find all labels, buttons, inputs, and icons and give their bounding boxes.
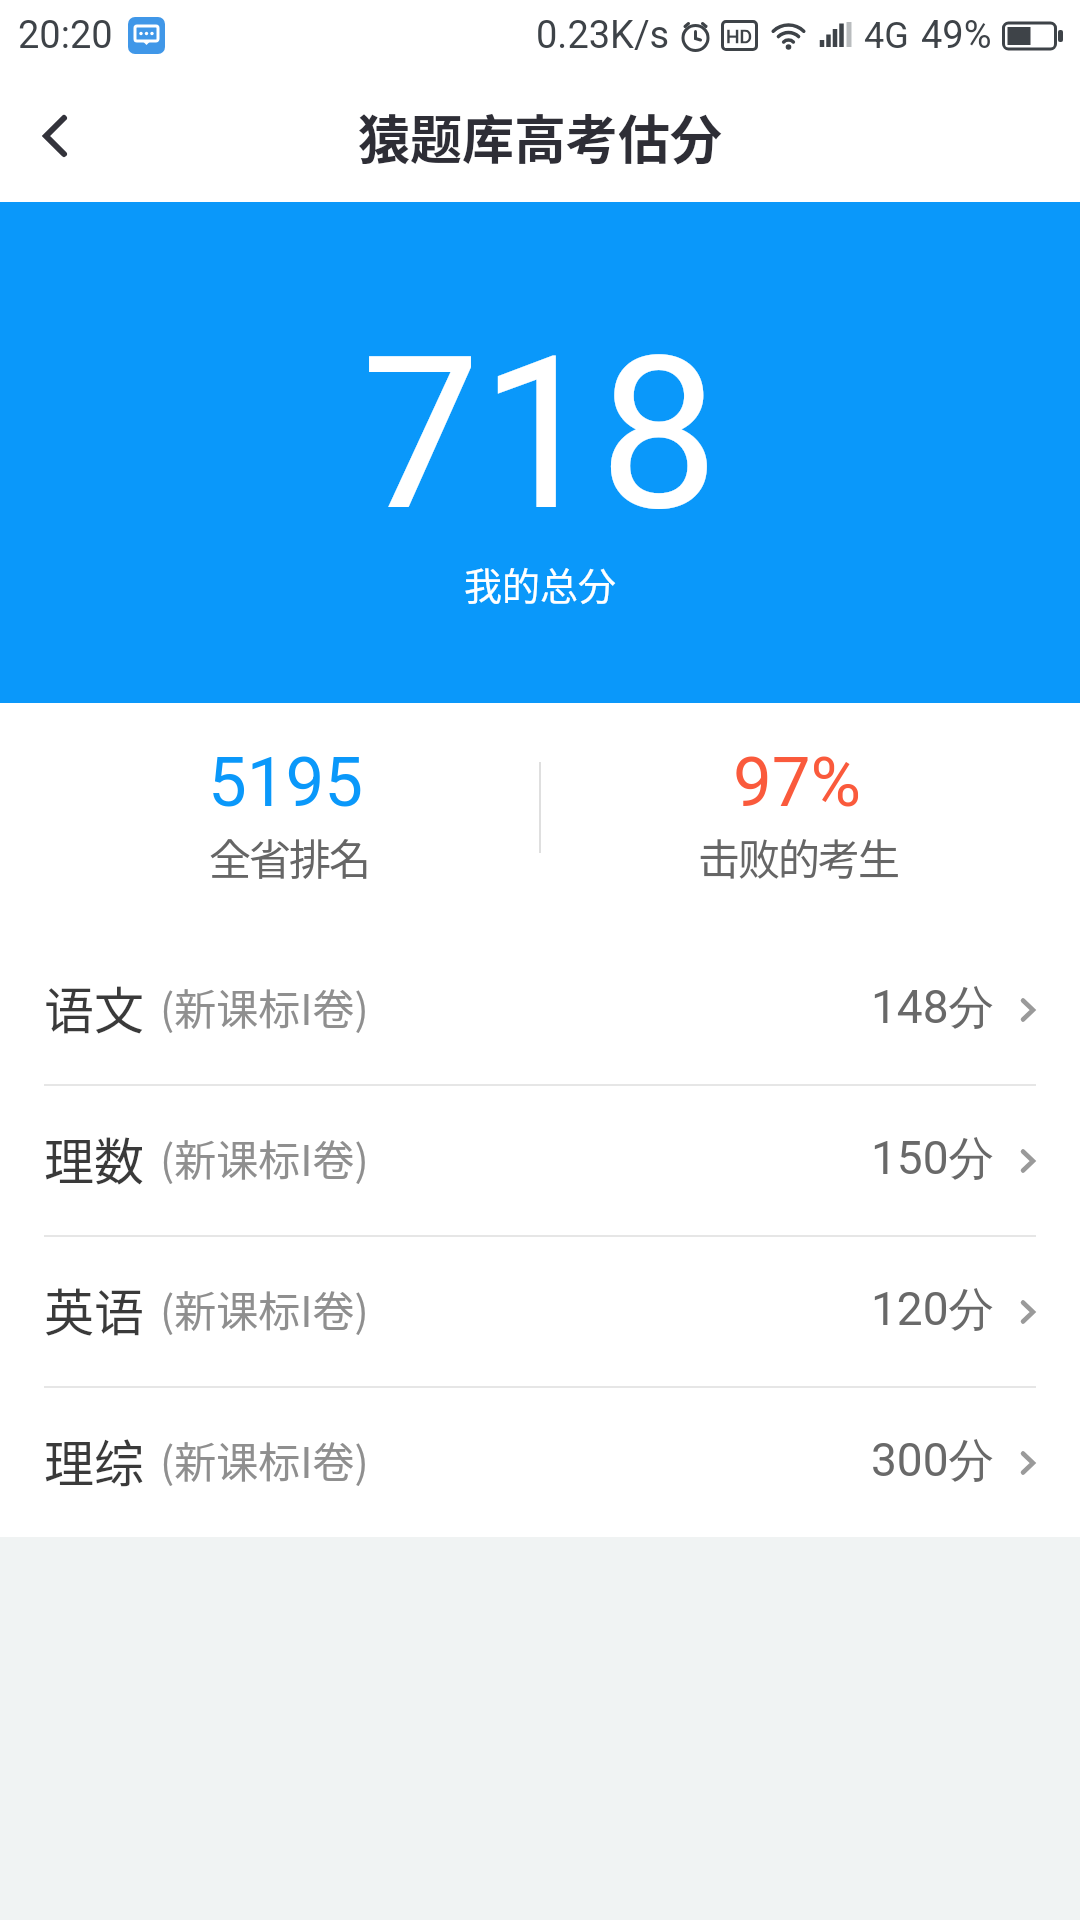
staticText: 全省排名 [209,826,370,887]
staticText: 300分 [871,1432,995,1490]
staticText: 击败的考生 [698,826,899,887]
button[interactable] [128,17,165,54]
staticText: 4G [864,15,909,57]
staticText: 猿题库高考估分 [358,99,723,174]
button[interactable]: 英语 [0,1237,1080,1386]
staticText: 97% [733,742,862,823]
staticText: 120分 [871,1281,995,1339]
staticText: 理数 [44,1122,144,1194]
staticText: 150分 [871,1130,995,1188]
button[interactable]: 语文 [0,935,1080,1084]
staticText: (新课标I卷) [160,1429,369,1490]
staticText: 0.23K/s [536,13,670,58]
staticText: 49% [921,13,992,58]
staticText: (新课标I卷) [160,1127,369,1188]
staticText: 20:20 [18,13,113,58]
button[interactable] [28,108,84,164]
button[interactable]: 理数 [0,1086,1080,1235]
staticText: 语文 [44,971,144,1043]
staticText: (新课标I卷) [160,1278,369,1339]
staticText: 我的总分 [464,556,617,611]
staticText: HD [726,25,753,47]
staticText: 理综 [44,1424,144,1496]
staticText: 5195 [208,742,364,823]
staticText: 英语 [44,1273,144,1345]
staticText: (新课标I卷) [160,976,369,1037]
button[interactable]: 理综 [0,1388,1080,1537]
staticText: 718 [361,310,719,558]
staticText: 148分 [871,979,995,1037]
